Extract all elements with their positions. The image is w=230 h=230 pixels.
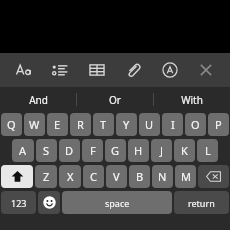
staticText: Or [109,93,121,107]
button[interactable]: Shift [1,165,33,188]
staticText: With [181,93,203,107]
button[interactable]: O [185,113,206,136]
staticText: E [54,117,61,132]
button[interactable]: I [162,113,183,136]
button[interactable]: space [62,191,172,214]
button[interactable]: Z [35,165,57,188]
button[interactable]: E [47,113,68,136]
button[interactable]: K [174,139,195,162]
button[interactable]: Insert table [84,57,110,83]
staticText: R [77,117,84,132]
staticText: G [111,143,120,158]
button[interactable]: A [12,139,34,162]
button[interactable]: Q [1,113,22,136]
button[interactable]: Text formatting [11,57,37,83]
button[interactable]: Or [77,87,153,112]
button[interactable]: With [154,87,230,112]
button[interactable]: 123 [1,191,36,214]
staticText: U [145,117,154,132]
button[interactable]: R [70,113,91,136]
button[interactable]: W [24,113,45,136]
staticText: F [90,143,96,158]
button[interactable]: T [93,113,114,136]
button[interactable]: P [208,113,229,136]
staticText: J [160,143,164,158]
button[interactable]: L [197,139,218,162]
button[interactable]: M [175,165,196,188]
staticText: space [105,197,130,209]
button[interactable]: Delete [198,165,229,188]
staticText: M [181,169,191,184]
button[interactable]: return [174,191,229,214]
staticText: K [181,143,188,158]
button[interactable]: D [59,139,80,162]
button[interactable]: F [82,139,103,162]
staticText: return [188,197,215,209]
staticText: X [67,169,74,184]
button[interactable]: Attach file [120,57,146,83]
button[interactable]: N [152,165,173,188]
button[interactable]: Bulleted list [47,57,73,83]
staticText: N [158,169,167,184]
button[interactable]: G [105,139,126,162]
button[interactable]: S [36,139,57,162]
button[interactable]: Close [193,57,219,83]
button[interactable]: X [59,165,81,188]
staticText: I [171,117,175,132]
staticText: D [65,143,74,158]
staticText: Z [43,169,50,184]
staticText: V [113,169,120,184]
staticText: 123 [11,197,27,209]
staticText: B [136,169,144,184]
staticText: S [43,143,50,158]
staticText: And [29,93,48,107]
staticText: Q [7,117,16,132]
staticText: C [90,169,97,184]
staticText: W [29,117,40,132]
staticText: O [191,117,200,132]
staticText: Y [123,117,130,132]
button[interactable]: V [106,165,127,188]
button[interactable]: B [129,165,150,188]
staticText: A [19,143,27,158]
staticText: H [134,143,143,158]
button[interactable]: J [151,139,172,162]
button[interactable]: Emoji [38,191,60,214]
button[interactable]: And [0,87,76,112]
button[interactable]: C [83,165,104,188]
button[interactable]: H [128,139,149,162]
button[interactable]: Y [116,113,137,136]
staticText: L [205,143,211,158]
button[interactable]: Markup [157,57,183,83]
staticText: P [215,117,222,132]
button[interactable]: U [139,113,160,136]
staticText: T [100,117,107,132]
